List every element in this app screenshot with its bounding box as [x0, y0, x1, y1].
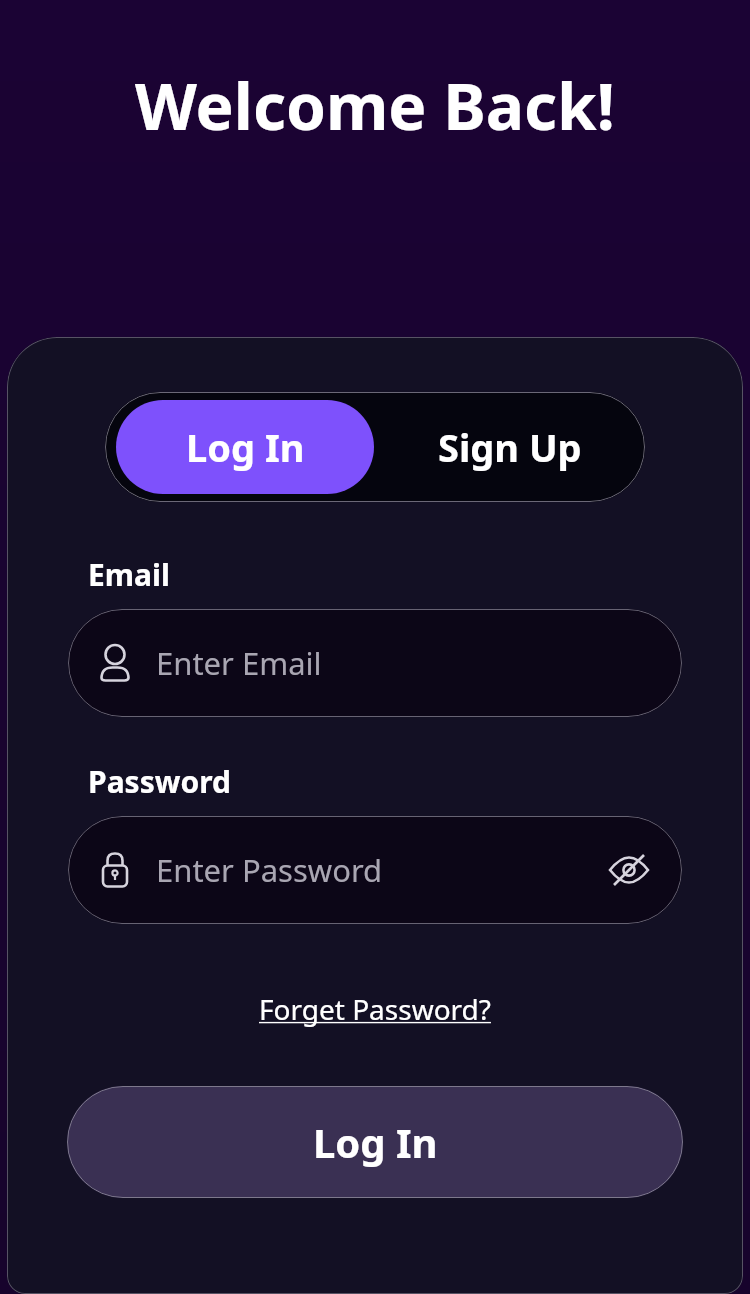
- staticText: Password: [88, 761, 231, 802]
- staticText: Email: [88, 554, 170, 595]
- staticText: Log In: [186, 421, 305, 473]
- button[interactable]: Email: [68, 609, 682, 717]
- staticText: Enter Email: [156, 642, 322, 684]
- button[interactable]: Password: [68, 816, 682, 924]
- other: Password: [94, 849, 136, 891]
- other: Show password: [606, 847, 652, 893]
- staticText: Log In: [313, 1115, 438, 1169]
- button[interactable]: Log In: [67, 1086, 683, 1198]
- staticText: Forget Password?: [259, 990, 491, 1028]
- button[interactable]: Forget Password?: [251, 986, 499, 1032]
- button[interactable]: Sign Up: [375, 392, 645, 502]
- button[interactable]: Log In: [116, 400, 374, 494]
- other: Email: [94, 642, 136, 684]
- staticText: Welcome Back!: [135, 62, 615, 149]
- staticText: Sign Up: [438, 421, 582, 473]
- staticText: Enter Password: [156, 849, 383, 891]
